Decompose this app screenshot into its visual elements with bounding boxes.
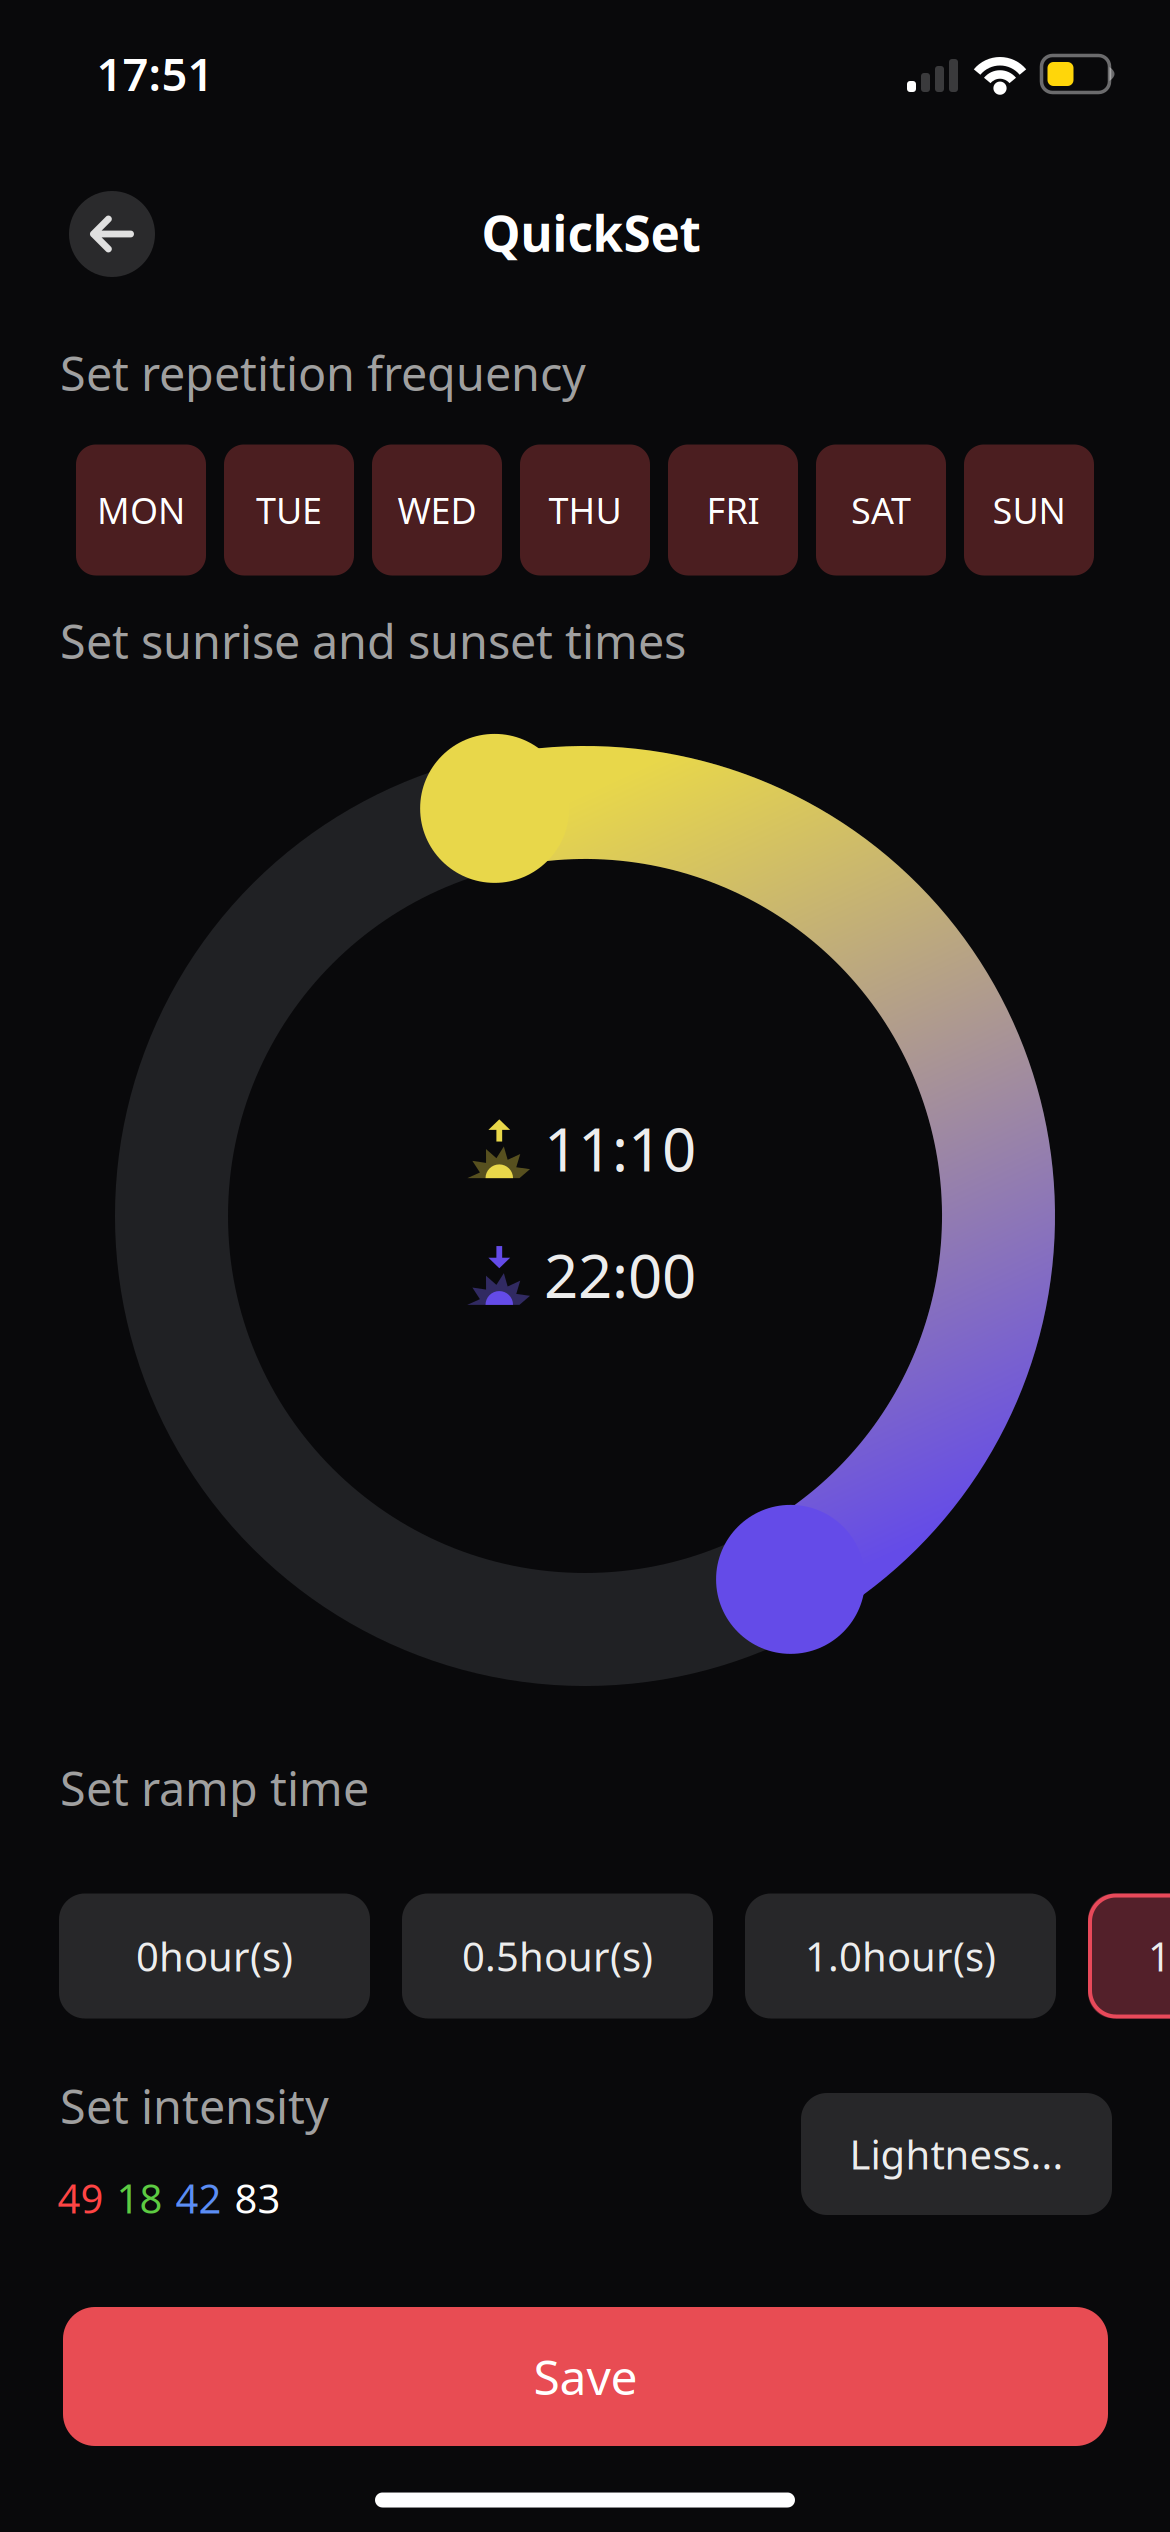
button[interactable]: Back xyxy=(69,191,155,277)
staticText: 17:51 xyxy=(96,43,213,104)
staticText: 49 xyxy=(57,2171,103,2224)
button[interactable]: 0hour(s) xyxy=(59,1893,370,2018)
button[interactable]: FRI xyxy=(668,444,798,575)
staticText: QuickSet xyxy=(481,200,700,265)
staticText: THU xyxy=(548,486,621,534)
button[interactable]: WED xyxy=(372,444,502,575)
staticText: Set sunrise and sunset times xyxy=(60,610,686,672)
button[interactable]: 1.5hour(s) xyxy=(1088,1893,1170,2018)
staticText: 83 xyxy=(234,2171,280,2224)
staticText: TUE xyxy=(256,486,322,534)
button[interactable]: TUE xyxy=(224,444,354,575)
button[interactable]: SAT xyxy=(816,444,946,575)
staticText: MON xyxy=(97,486,185,534)
staticText: WED xyxy=(397,486,476,534)
staticText: 0.5hour(s) xyxy=(462,1929,653,1982)
staticText: 1.5hour(s) xyxy=(1148,1929,1170,1982)
staticText: Lightness... xyxy=(849,2127,1063,2180)
staticText: SUN xyxy=(992,486,1065,534)
staticText: Set ramp time xyxy=(60,1757,369,1819)
staticText: SAT xyxy=(851,486,911,534)
button[interactable]: 1.0hour(s) xyxy=(745,1893,1056,2018)
staticText: Save xyxy=(533,2345,637,2408)
staticText: 11:10 xyxy=(544,1108,696,1188)
button[interactable]: Lightness... xyxy=(801,2093,1112,2215)
button[interactable]: Save xyxy=(63,2307,1108,2446)
staticText: 18 xyxy=(116,2171,162,2224)
button[interactable]: SUN xyxy=(964,444,1094,575)
staticText: 42 xyxy=(175,2171,221,2224)
button[interactable]: MON xyxy=(76,444,206,575)
staticText: 0hour(s) xyxy=(136,1929,293,1982)
staticText: Set intensity xyxy=(60,2075,329,2137)
staticText: 22:00 xyxy=(544,1235,696,1315)
staticText: 1.0hour(s) xyxy=(805,1929,996,1982)
staticText: Set repetition frequency xyxy=(60,342,586,404)
button[interactable]: 0.5hour(s) xyxy=(402,1893,713,2018)
button[interactable]: THU xyxy=(520,444,650,575)
staticText: FRI xyxy=(706,486,759,534)
